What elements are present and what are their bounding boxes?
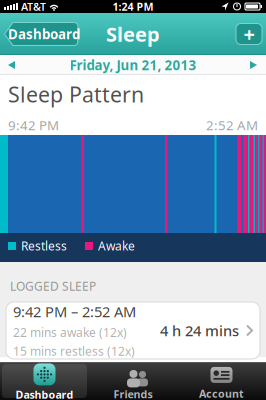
staticText: Dashboard bbox=[15, 387, 73, 400]
staticText: Sleep bbox=[106, 21, 160, 47]
button[interactable]: Friends bbox=[89, 362, 177, 400]
staticText: Awake bbox=[98, 238, 135, 254]
button[interactable]: 9:42 PM – 2:52 AM bbox=[0, 302, 266, 359]
staticText: Account bbox=[199, 386, 244, 400]
staticText: Friends bbox=[113, 387, 152, 400]
staticText: 4 h 24 mins bbox=[160, 321, 239, 340]
staticText: Friday, Jun 21, 2013 bbox=[69, 56, 196, 74]
staticText: Restless bbox=[21, 238, 67, 254]
staticText: 15 mins restless (12x) bbox=[13, 343, 135, 359]
staticText: 9:42 PM – 2:52 AM bbox=[13, 302, 136, 321]
button[interactable]: + bbox=[236, 23, 262, 44]
staticText: 1:24 PM bbox=[112, 0, 153, 14]
button[interactable]: Dashboard bbox=[0, 362, 89, 400]
staticText: Sleep Pattern bbox=[8, 80, 144, 108]
button[interactable]: Dashboard bbox=[4, 22, 78, 46]
staticText: 2:52 AM bbox=[206, 116, 258, 134]
staticText: 9:42 PM bbox=[8, 116, 59, 134]
button[interactable] bbox=[250, 61, 266, 69]
staticText: + bbox=[243, 21, 254, 47]
staticText: Dashboard bbox=[8, 25, 80, 43]
staticText: LOGGED SLEEP bbox=[10, 278, 96, 294]
button[interactable] bbox=[0, 61, 16, 69]
staticText: 22 mins awake (12x) bbox=[13, 324, 127, 340]
staticText: AT&T bbox=[21, 0, 46, 14]
button[interactable]: Account bbox=[177, 362, 266, 400]
